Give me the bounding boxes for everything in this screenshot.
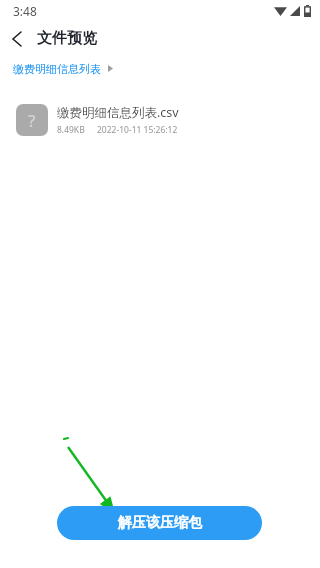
staticText: 8.49KB (57, 124, 85, 136)
staticText: 3:48 (13, 3, 37, 19)
staticText: 文件预览 (37, 29, 97, 48)
button[interactable]: 解压该压缩包 (57, 506, 262, 540)
staticText: 缴费明细信息列表.csv (57, 104, 179, 121)
staticText: ? (28, 109, 36, 132)
staticText: 缴费明细信息列表 (13, 62, 101, 76)
button[interactable]: 缴费明细信息列表 (13, 62, 101, 76)
staticText: 解压该压缩包 (118, 514, 202, 532)
button[interactable]: ? (0, 100, 320, 140)
button[interactable]: Back (0, 22, 34, 55)
staticText: 2022-10-11 15:26:12 (97, 124, 178, 136)
